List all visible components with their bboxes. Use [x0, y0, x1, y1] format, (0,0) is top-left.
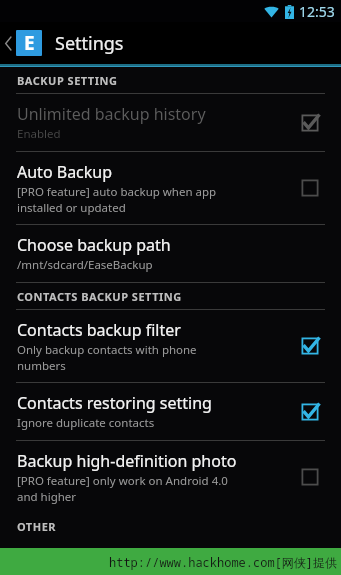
staticText: [PRO feature] auto backup when app insta… — [17, 184, 217, 215]
button[interactable]: Contacts restoring setting — [293, 395, 327, 429]
button[interactable]: Choose backup path — [0, 225, 341, 282]
button[interactable]: Navigate up — [0, 26, 46, 60]
button[interactable]: Auto Backup — [293, 171, 327, 205]
staticText: Enabled — [17, 126, 61, 142]
button[interactable]: Auto Backup — [0, 152, 341, 224]
staticText: CONTACTS BACKUP SETTING — [17, 289, 182, 304]
staticText: Contacts backup filter — [17, 319, 181, 341]
staticText: Ignore duplicate contacts — [17, 415, 155, 431]
staticText: [PRO feature] only work on Android 4.0 a… — [17, 473, 228, 504]
button[interactable]: Unlimited backup history — [0, 94, 341, 151]
staticText: BACKUP SETTING — [17, 73, 118, 88]
staticText: E — [24, 30, 35, 56]
button[interactable]: Backup high-definition photo — [0, 441, 341, 513]
staticText: Choose backup path — [17, 234, 171, 256]
staticText: Unlimited backup history — [17, 103, 206, 125]
staticText: http://www.hackhome.com[网侠]提供 — [108, 554, 337, 570]
button[interactable]: Contacts restoring setting — [0, 383, 341, 440]
staticText: /mnt/sdcard/EaseBackup — [17, 257, 153, 273]
staticText: Auto Backup — [17, 161, 113, 183]
staticText: Settings — [55, 31, 124, 56]
staticText: OTHER — [17, 519, 57, 534]
staticText: Contacts restoring setting — [17, 392, 212, 414]
staticText: Only backup contacts with phone numbers — [17, 342, 197, 373]
button[interactable]: Contacts backup filter — [293, 329, 327, 363]
button[interactable]: Unlimited backup history — [293, 106, 327, 140]
button[interactable]: Contacts backup filter — [0, 310, 341, 382]
button[interactable]: Backup high-definition photo — [293, 460, 327, 494]
staticText: 12:53 — [299, 2, 335, 21]
staticText: Backup high-definition photo — [17, 450, 237, 472]
